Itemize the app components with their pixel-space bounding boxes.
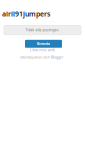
button[interactable]: Blogger	[51, 55, 63, 59]
staticText: airil91jumpers	[2, 9, 50, 18]
staticText: .	[64, 55, 65, 59]
staticText: Diberdayakan oleh	[20, 55, 50, 59]
staticText: Tidak ada postingan.	[25, 28, 59, 32]
staticText: Lihat versi web	[30, 48, 55, 52]
staticText: Blogger	[51, 55, 63, 59]
button[interactable]: Beranda	[25, 40, 62, 48]
button[interactable]: Lihat versi web	[0, 48, 85, 52]
staticText: Beranda	[37, 42, 50, 46]
